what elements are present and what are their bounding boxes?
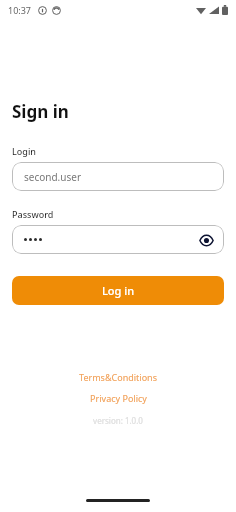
staticText: second.user: [24, 170, 82, 184]
staticText: Login: [12, 145, 36, 157]
staticText: Sign in: [12, 100, 69, 123]
staticText: Password: [12, 208, 54, 220]
staticText: Privacy Policy: [90, 392, 147, 404]
button[interactable]: second.user: [12, 162, 224, 191]
button[interactable]: Log in: [12, 276, 224, 305]
button[interactable]: Show password: [12, 225, 224, 254]
staticText: version: 1.0.0: [93, 415, 143, 426]
staticText: Log in: [102, 283, 135, 298]
button[interactable]: Privacy Policy: [12, 392, 224, 404]
staticText: Terms&Conditions: [79, 371, 157, 383]
staticText: 10:37: [8, 4, 32, 16]
button[interactable]: Terms&Conditions: [12, 371, 224, 383]
button[interactable]: Show password: [197, 231, 215, 249]
